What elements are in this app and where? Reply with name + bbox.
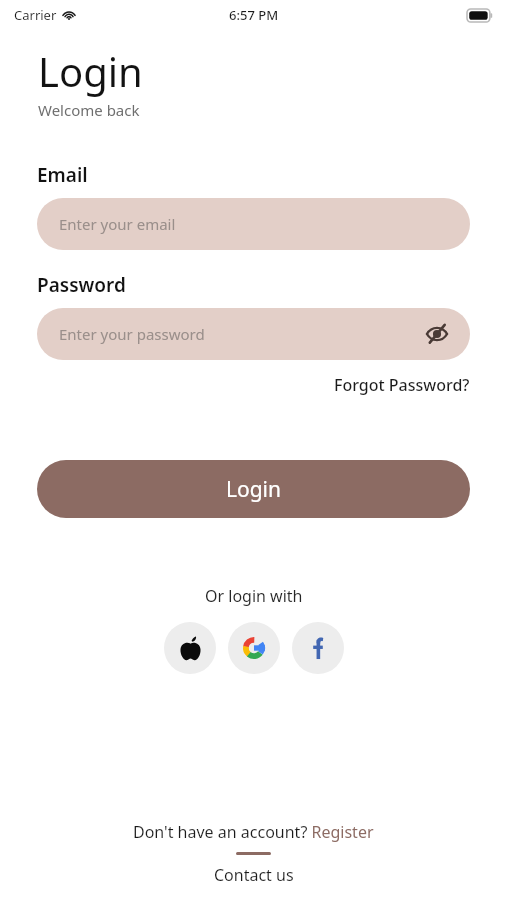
staticText: Login [226,475,282,504]
button[interactable]: Sign in with Facebook [292,622,344,674]
button[interactable]: Enter your email [37,198,470,250]
staticText: 6:57 PM [229,6,279,24]
staticText: Enter your password [59,324,205,344]
staticText: Forgot Password? [334,374,470,396]
button[interactable]: Show password [420,317,454,351]
staticText: Enter your email [59,214,176,234]
button[interactable]: Sign in with Google [228,622,280,674]
staticText: Contact us [214,864,294,886]
button[interactable]: Don't have an account? Register [133,821,374,843]
button[interactable]: Enter your password [37,308,470,360]
button[interactable]: Contact us [214,864,294,886]
staticText: Password [37,272,126,298]
staticText: Email [37,162,88,188]
staticText: Login [38,44,143,98]
button[interactable]: Forgot Password? [334,374,470,396]
staticText: Don't have an account? Register [133,821,374,843]
staticText: Carrier [14,6,57,24]
button[interactable]: Sign in with Apple [164,622,216,674]
staticText: Or login with [205,585,303,607]
staticText: Welcome back [38,100,140,120]
button[interactable]: Login [37,460,470,518]
